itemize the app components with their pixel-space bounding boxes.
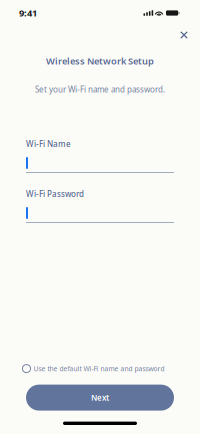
staticText: Use the default Wi-Fi name and password xyxy=(33,364,164,373)
staticText: 9:41 xyxy=(19,7,37,19)
button[interactable]: Use the default Wi-Fi name and password xyxy=(0,361,200,377)
button[interactable]: Wi-Fi Name xyxy=(26,140,174,173)
button[interactable]: Next xyxy=(26,385,174,411)
staticText: Wi-Fi Name xyxy=(26,139,71,149)
staticText: Wi-Fi Password xyxy=(26,189,84,199)
staticText: Next xyxy=(91,392,109,403)
button[interactable]: Wi-Fi Password xyxy=(26,190,174,223)
staticText: Wireless Network Setup xyxy=(46,55,154,67)
button[interactable]: Close xyxy=(173,26,195,44)
staticText: Set your Wi-Fi name and password. xyxy=(35,84,165,95)
